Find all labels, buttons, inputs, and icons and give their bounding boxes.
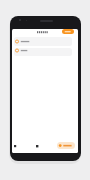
button[interactable] [14,48,72,56]
button[interactable] [14,37,72,46]
button[interactable] [62,29,74,34]
button[interactable] [57,142,75,149]
